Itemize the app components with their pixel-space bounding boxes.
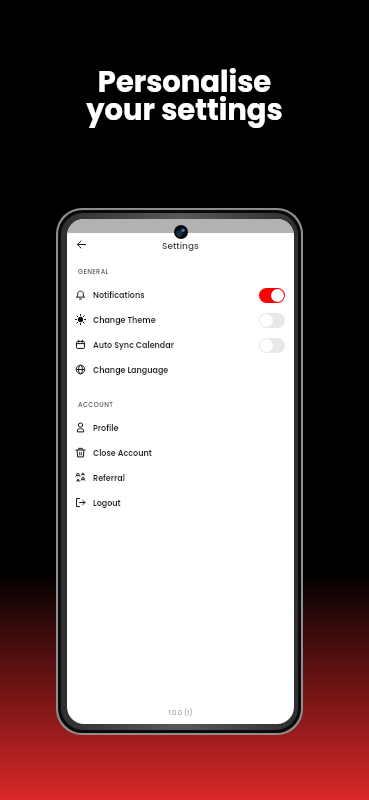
staticText: ACCOUNT: [78, 400, 114, 409]
staticText: Referral: [93, 473, 125, 484]
staticText: 1.0.0 (1): [67, 708, 294, 718]
staticText: Auto Sync Calendar: [93, 340, 174, 351]
staticText: Personalise your settings: [0, 62, 369, 130]
button[interactable]: Logout: [67, 491, 294, 516]
button[interactable]: Change Theme: [67, 308, 294, 333]
staticText: Change Theme: [93, 315, 156, 326]
button[interactable]: Notifications: [67, 283, 294, 308]
button[interactable]: Referral: [67, 466, 294, 491]
staticText: GENERAL: [78, 267, 109, 276]
staticText: Logout: [93, 498, 121, 509]
button[interactable]: Toggle off: [259, 313, 285, 328]
staticText: Close Account: [93, 448, 152, 459]
button[interactable]: Auto Sync Calendar: [67, 333, 294, 358]
staticText: Settings: [162, 240, 199, 253]
button[interactable]: Profile: [67, 416, 294, 441]
button[interactable]: Back: [73, 236, 90, 253]
staticText: Profile: [93, 423, 119, 434]
button[interactable]: Change Language: [67, 358, 294, 383]
button[interactable]: Toggle off: [259, 338, 285, 353]
button[interactable]: Close Account: [67, 441, 294, 466]
button[interactable]: Toggle on: [259, 288, 285, 303]
staticText: Change Language: [93, 365, 169, 376]
staticText: Notifications: [93, 290, 145, 301]
